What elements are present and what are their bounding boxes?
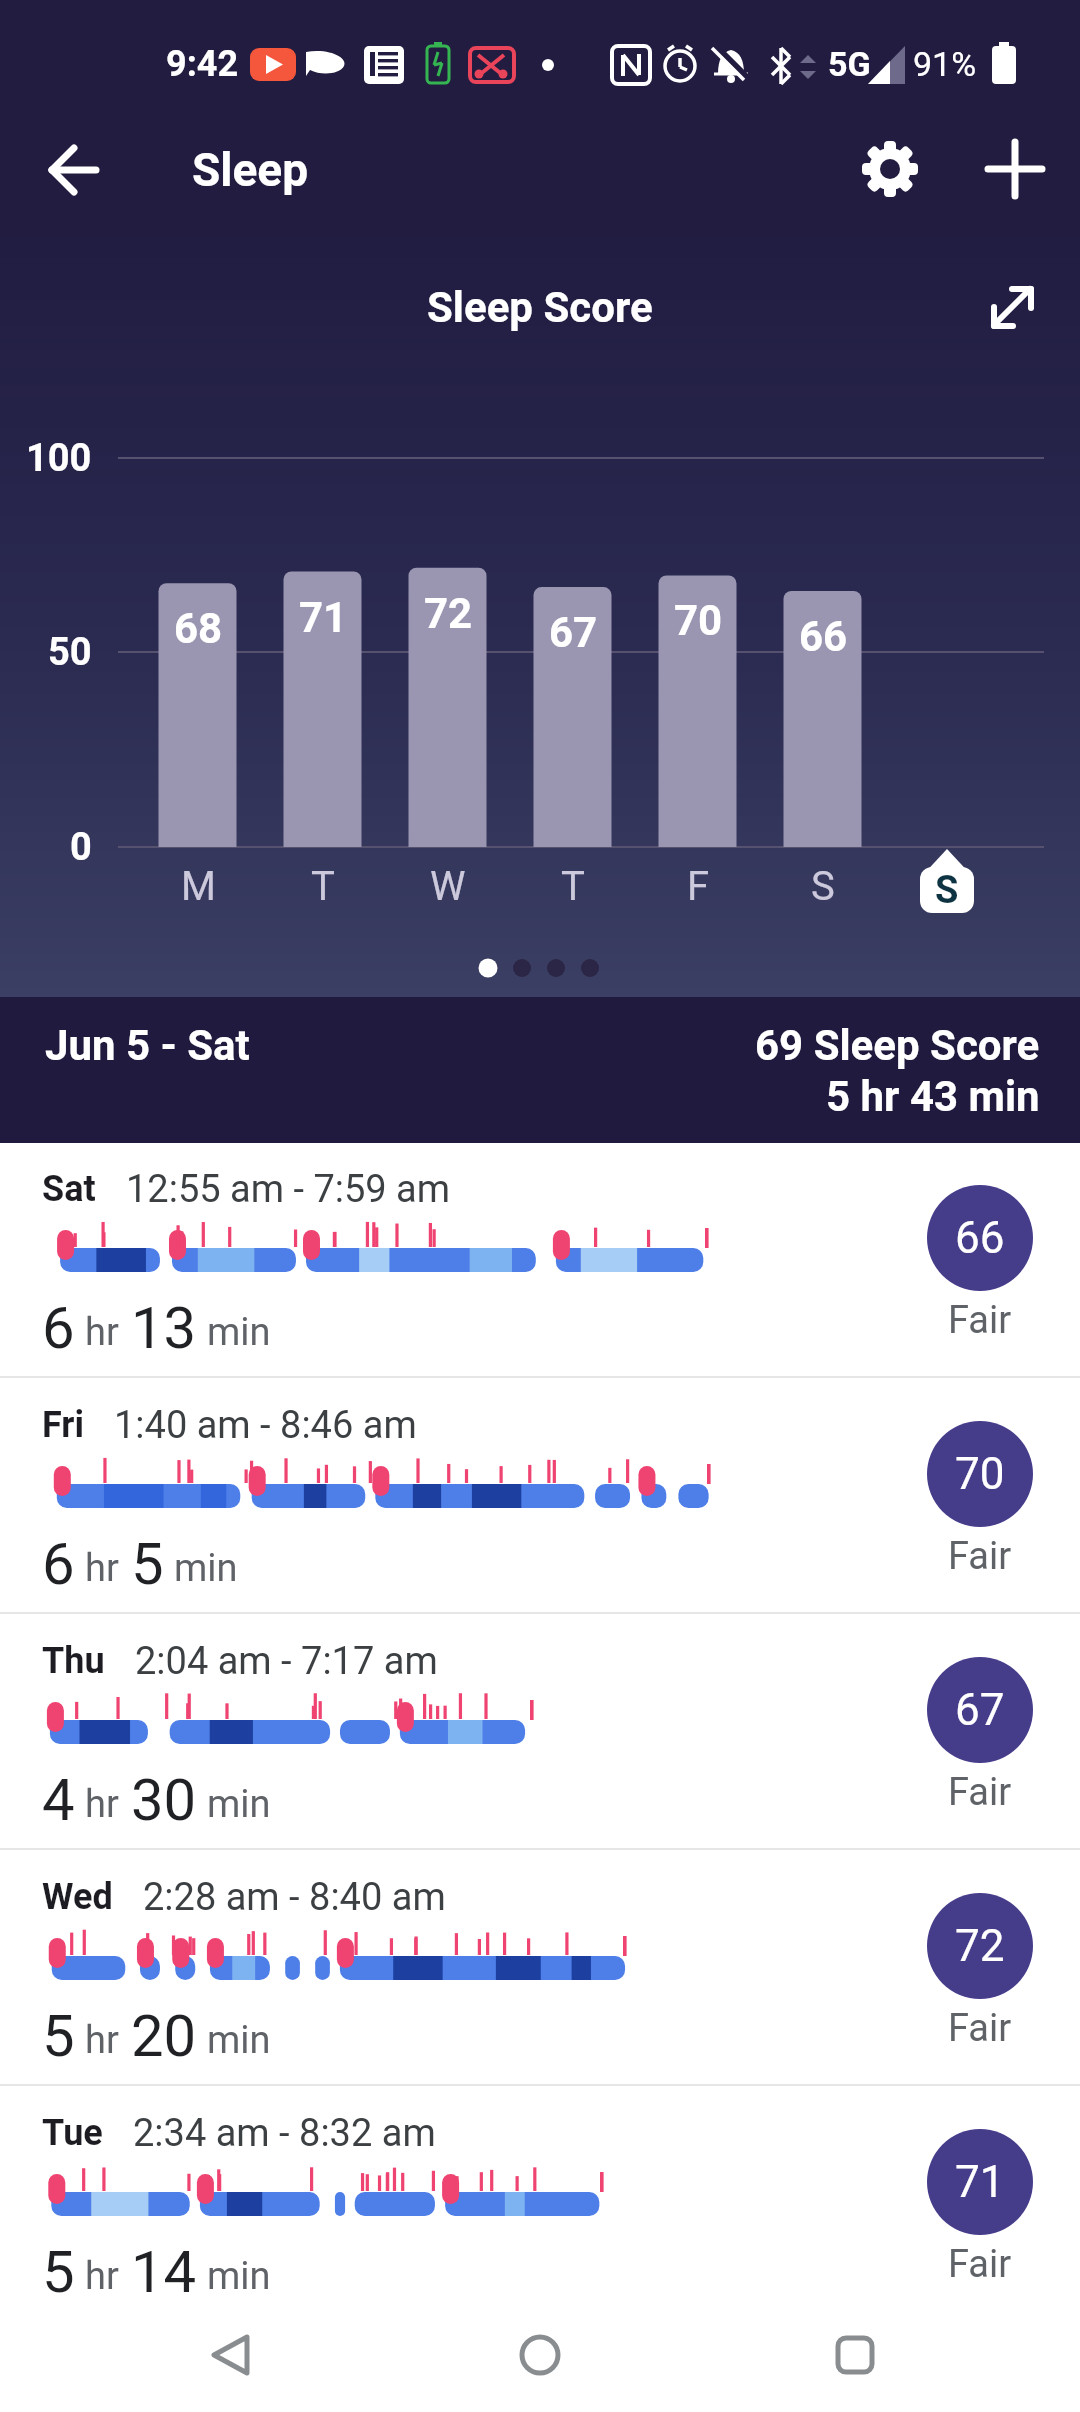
staticText: min xyxy=(207,1310,271,1355)
staticText: 71 xyxy=(955,2156,1005,2208)
staticText: Fair xyxy=(948,2242,1012,2287)
button[interactable]: Sat xyxy=(0,1144,1080,1378)
staticText: S xyxy=(935,868,959,913)
staticText: 6 xyxy=(42,1530,75,1598)
button[interactable]: S xyxy=(783,861,863,911)
button[interactable]: T xyxy=(533,861,613,911)
button[interactable] xyxy=(975,272,1050,347)
staticText: 9:42 xyxy=(166,43,238,85)
button[interactable]: Fri xyxy=(0,1380,1080,1614)
staticText: Tue xyxy=(42,2112,103,2154)
staticText: min xyxy=(207,2254,271,2299)
staticText: 70 xyxy=(955,1448,1005,1500)
staticText: hr xyxy=(85,2018,119,2063)
staticText: 67 xyxy=(955,1684,1005,1736)
button[interactable] xyxy=(488,2322,592,2402)
staticText: 1:40 am - 8:46 am xyxy=(114,1403,417,1448)
staticText: 91% xyxy=(913,44,977,84)
staticText: 66 xyxy=(799,612,848,661)
staticText: Sat xyxy=(42,1168,96,1210)
staticText: Jun 5 - Sat xyxy=(45,1021,250,1070)
button[interactable] xyxy=(972,128,1058,210)
staticText: 5 xyxy=(42,2238,75,2306)
button[interactable]: Jun 5 - Sat xyxy=(0,997,1080,1143)
staticText: Fair xyxy=(948,1770,1012,1815)
staticText: 2:04 am - 7:17 am xyxy=(135,1639,438,1684)
staticText: Fair xyxy=(948,1298,1012,1343)
button[interactable] xyxy=(30,130,116,210)
staticText: 4 xyxy=(42,1766,75,1834)
staticText: hr xyxy=(85,2254,119,2299)
staticText: 70 xyxy=(674,596,723,645)
button[interactable]: F xyxy=(658,861,738,911)
staticText: 100 xyxy=(26,436,92,481)
staticText: Fair xyxy=(948,1534,1012,1579)
staticText: Fri xyxy=(42,1404,84,1446)
staticText: 30 xyxy=(131,1766,197,1834)
staticText: 5G xyxy=(828,44,871,84)
staticText: 5 hr 43 min xyxy=(826,1072,1040,1121)
button[interactable]: S xyxy=(907,849,987,919)
staticText: 50 xyxy=(48,630,92,675)
staticText: Sleep xyxy=(192,143,309,197)
staticText: T xyxy=(561,863,585,910)
button[interactable] xyxy=(803,2322,907,2402)
staticText: 72 xyxy=(424,589,473,638)
button[interactable]: T xyxy=(283,861,363,911)
staticText: M xyxy=(181,863,216,910)
button[interactable] xyxy=(848,128,932,210)
button[interactable]: W xyxy=(408,861,488,911)
staticText: Thu xyxy=(42,1640,105,1682)
staticText: 5 xyxy=(42,2002,75,2070)
staticText: min xyxy=(207,2018,271,2063)
staticText: 14 xyxy=(131,2238,197,2306)
staticText: Fair xyxy=(948,2006,1012,2051)
staticText: min xyxy=(207,1782,271,1827)
staticText: min xyxy=(174,1546,238,1591)
button[interactable]: Wed xyxy=(0,1852,1080,2086)
staticText: 13 xyxy=(131,1294,197,1362)
staticText: 2:34 am - 8:32 am xyxy=(133,2111,436,2156)
staticText: 20 xyxy=(131,2002,197,2070)
staticText: Sleep Score xyxy=(427,283,653,332)
staticText: hr xyxy=(85,1782,119,1827)
button[interactable]: Thu xyxy=(0,1616,1080,1850)
button[interactable] xyxy=(180,2322,284,2402)
staticText: W xyxy=(430,863,466,910)
staticText: F xyxy=(687,863,710,910)
staticText: 6 xyxy=(42,1294,75,1362)
staticText: 69 Sleep Score xyxy=(755,1021,1040,1070)
staticText: Wed xyxy=(42,1876,113,1918)
staticText: hr xyxy=(85,1546,119,1591)
staticText: 5 xyxy=(131,1530,164,1598)
staticText: 71 xyxy=(299,593,348,642)
staticText: 67 xyxy=(549,608,598,657)
staticText: 0 xyxy=(70,825,92,870)
button[interactable]: Tue xyxy=(0,2088,1080,2322)
staticText: 66 xyxy=(955,1212,1005,1264)
staticText: 72 xyxy=(955,1920,1005,1972)
staticText: 2:28 am - 8:40 am xyxy=(143,1875,446,1920)
staticText: T xyxy=(311,863,335,910)
button[interactable]: M xyxy=(158,861,238,911)
staticText: 68 xyxy=(174,604,223,653)
staticText: S xyxy=(811,863,835,910)
staticText: 12:55 am - 7:59 am xyxy=(126,1167,451,1212)
staticText: hr xyxy=(85,1310,119,1355)
